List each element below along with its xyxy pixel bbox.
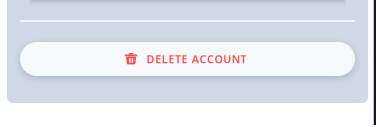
staticText: DELETE ACCOUNT bbox=[147, 52, 246, 66]
button[interactable]: DELETE ACCOUNT bbox=[20, 42, 355, 76]
